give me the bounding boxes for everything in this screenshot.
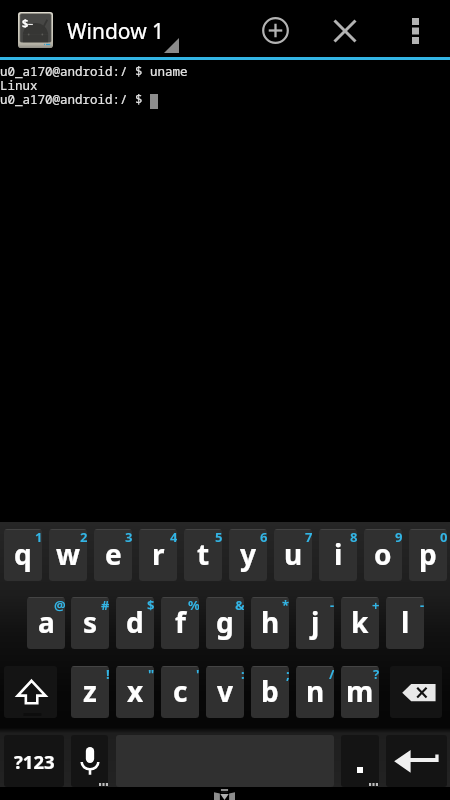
staticText: x <box>127 672 144 710</box>
button[interactable]: o <box>364 529 402 581</box>
button[interactable]: m <box>341 666 379 718</box>
staticText: 9 <box>395 529 402 546</box>
staticText: ? <box>373 666 379 683</box>
staticText: 0 <box>440 529 447 546</box>
button[interactable]: Symbols <box>4 735 64 787</box>
button[interactable]: y <box>229 529 267 581</box>
button[interactable]: x <box>116 666 154 718</box>
staticText: & <box>235 597 244 614</box>
staticText: 1 <box>35 529 42 546</box>
button[interactable]: v <box>206 666 244 718</box>
button[interactable]: u <box>274 529 312 581</box>
staticText: 8 <box>350 529 357 546</box>
staticText: : <box>241 666 244 683</box>
staticText: v <box>217 672 233 710</box>
button[interactable]: Close window <box>319 4 371 57</box>
staticText: l <box>401 603 410 641</box>
button[interactable]: a <box>27 597 65 649</box>
staticText: u <box>284 535 303 573</box>
staticText: r <box>152 535 165 573</box>
staticText: a <box>38 603 55 641</box>
button[interactable]: h <box>251 597 289 649</box>
staticText: + <box>372 597 379 614</box>
button[interactable]: Enter <box>386 735 447 787</box>
staticText: 7 <box>305 529 312 546</box>
button[interactable]: i <box>319 529 357 581</box>
staticText: t <box>197 535 210 573</box>
button[interactable]: g <box>206 597 244 649</box>
staticText: h <box>261 603 280 641</box>
staticText: i <box>334 535 343 573</box>
button[interactable]: j <box>296 597 334 649</box>
staticText: e <box>105 535 122 573</box>
staticText: w <box>56 535 80 573</box>
staticText: ?123 <box>14 749 55 774</box>
button[interactable]: p <box>409 529 447 581</box>
button[interactable]: Window 1 <box>60 0 185 57</box>
staticText: % <box>188 597 199 614</box>
button[interactable]: e <box>94 529 132 581</box>
button[interactable]: Shift <box>4 666 57 718</box>
staticText: # <box>101 597 109 614</box>
staticText: p <box>419 535 437 573</box>
staticText: g <box>216 603 234 641</box>
staticText: $ <box>147 597 154 614</box>
staticText: o <box>374 535 392 573</box>
staticText: Window 1 <box>67 17 165 46</box>
staticText: k <box>351 603 369 641</box>
button[interactable]: w <box>49 529 87 581</box>
staticText: 3 <box>125 529 132 546</box>
staticText: s <box>83 603 98 641</box>
staticText: ; <box>286 666 289 683</box>
staticText: / <box>329 666 334 683</box>
staticText: 4 <box>170 529 177 546</box>
button[interactable]: More options <box>392 4 438 57</box>
staticText: d <box>126 603 144 641</box>
button[interactable]: b <box>251 666 289 718</box>
button[interactable]: l <box>386 597 424 649</box>
button[interactable]: s <box>71 597 109 649</box>
staticText: @ <box>54 597 65 614</box>
staticText: * <box>282 597 289 614</box>
staticText: u0_a170@android:/ $ uname Linux u0_a170@… <box>0 63 188 107</box>
staticText: n <box>306 672 325 710</box>
staticText: z <box>83 672 97 710</box>
button[interactable]: k <box>341 597 379 649</box>
staticText: - <box>420 597 424 614</box>
button[interactable]: q <box>4 529 42 581</box>
staticText: ' <box>196 666 199 683</box>
staticText: q <box>14 535 32 573</box>
staticText: $ <box>22 15 29 30</box>
button[interactable]: Period <box>341 735 379 787</box>
staticText: b <box>261 672 279 710</box>
button[interactable]: z <box>71 666 109 718</box>
staticText: ! <box>106 666 109 683</box>
staticText: 5 <box>215 529 222 546</box>
button[interactable]: d <box>116 597 154 649</box>
staticText: m <box>346 672 374 710</box>
staticText: y <box>240 535 256 573</box>
button[interactable]: n <box>296 666 334 718</box>
button[interactable]: Delete <box>390 666 442 718</box>
button[interactable]: f <box>161 597 199 649</box>
staticText: c <box>173 672 188 710</box>
staticText: 6 <box>260 529 267 546</box>
staticText: j <box>311 603 320 641</box>
button[interactable]: c <box>161 666 199 718</box>
staticText: " <box>148 666 154 683</box>
button[interactable]: New window <box>249 4 301 57</box>
button[interactable]: t <box>184 529 222 581</box>
button[interactable]: Voice input <box>71 735 108 787</box>
staticText: 2 <box>80 529 87 546</box>
button[interactable]: r <box>139 529 177 581</box>
staticText: - <box>330 597 334 614</box>
staticText: f <box>175 603 186 641</box>
